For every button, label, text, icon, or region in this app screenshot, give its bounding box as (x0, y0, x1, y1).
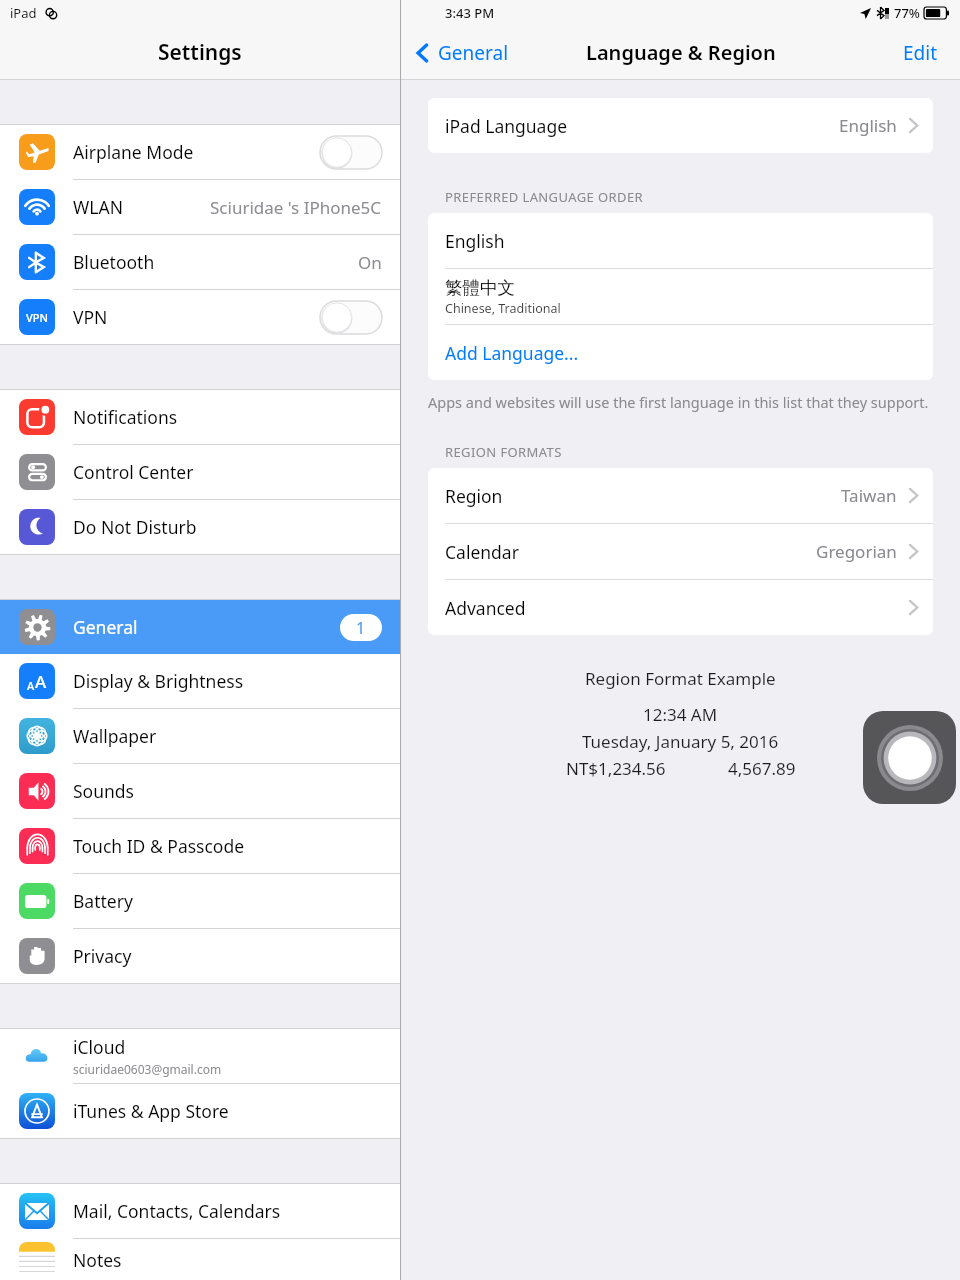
staticText: Sciuridae 's IPhone5C (210, 196, 382, 219)
staticText: 77% (894, 4, 920, 22)
button[interactable]: 繁體中文 (428, 269, 933, 324)
button[interactable]: Control Center (0, 445, 400, 499)
button[interactable]: Sounds (0, 764, 400, 818)
staticText: Chinese, Traditional (445, 300, 561, 317)
staticText: Calendar (445, 540, 519, 564)
staticText: WLAN (73, 195, 123, 219)
staticText: Airplane Mode (73, 140, 194, 164)
button[interactable]: Toggle (320, 136, 382, 169)
staticText: Wallpaper (73, 724, 157, 748)
button[interactable]: iTunes & App Store (0, 1084, 400, 1138)
button[interactable]: Advanced (428, 580, 933, 635)
button[interactable]: Battery (0, 874, 400, 928)
staticText: Region (445, 484, 503, 508)
button[interactable]: General (401, 26, 519, 79)
staticText: A (27, 678, 35, 693)
button[interactable]: Wallpaper (0, 709, 400, 763)
staticText: 12:34 AM (643, 703, 718, 726)
staticText: iCloud (73, 1035, 126, 1059)
button[interactable]: Touch ID & Passcode (0, 819, 400, 873)
staticText: Mail, Contacts, Calendars (73, 1199, 281, 1223)
staticText: Edit (903, 40, 938, 66)
staticText: Privacy (73, 944, 132, 968)
staticText: Touch ID & Passcode (73, 834, 245, 858)
staticText: Tuesday, January 5, 2016 (582, 730, 779, 753)
staticText: NT$1,234.56 (566, 757, 666, 780)
staticText: English (839, 114, 897, 137)
staticText: Bluetooth (73, 250, 155, 274)
staticText: Settings (158, 38, 242, 67)
staticText: Notifications (73, 405, 178, 429)
button[interactable]: Notes (0, 1239, 400, 1280)
button[interactable]: iCloud (0, 1029, 400, 1083)
button[interactable]: Calendar (428, 524, 933, 579)
staticText: Notes (73, 1248, 122, 1272)
staticText: 繁體中文 (445, 277, 515, 299)
staticText: On (358, 251, 382, 274)
staticText: General (438, 40, 509, 66)
staticText: Sounds (73, 779, 134, 803)
staticText: 4,567.89 (728, 757, 796, 780)
button[interactable]: Airplane Mode (0, 125, 400, 179)
staticText: Battery (73, 889, 133, 913)
button[interactable]: English (428, 213, 933, 268)
staticText: Advanced (445, 596, 526, 620)
button[interactable]: A (0, 654, 400, 708)
staticText: iTunes & App Store (73, 1099, 229, 1123)
button[interactable]: Do Not Disturb (0, 500, 400, 554)
button[interactable]: Toggle (320, 301, 382, 334)
staticText: PREFERRED LANGUAGE ORDER (445, 188, 644, 206)
staticText: Display & Brightness (73, 669, 244, 693)
staticText: iPad (10, 4, 37, 22)
staticText: 3:43 PM (445, 4, 495, 22)
staticText: Control Center (73, 460, 194, 484)
button[interactable]: Bluetooth (0, 235, 400, 289)
button[interactable]: Add Language... (428, 325, 933, 380)
staticText: Region Format Example (585, 667, 776, 690)
staticText: Do Not Disturb (73, 515, 197, 539)
staticText: VPN (26, 310, 49, 325)
button[interactable]: Edit (881, 26, 960, 79)
staticText: English (445, 229, 505, 253)
staticText: Add Language... (445, 341, 579, 365)
staticText: VPN (73, 305, 108, 329)
staticText: A (35, 670, 47, 693)
button[interactable]: AssistiveTouch (863, 711, 956, 804)
staticText: Taiwan (841, 484, 897, 507)
staticText: General (73, 615, 138, 639)
button[interactable]: Privacy (0, 929, 400, 983)
button[interactable]: iPad Language (428, 98, 933, 153)
button[interactable]: VPN (0, 290, 400, 344)
button[interactable]: Mail, Contacts, Calendars (0, 1184, 400, 1238)
staticText: REGION FORMATS (445, 443, 562, 461)
staticText: iPad Language (445, 114, 568, 138)
button[interactable]: WLAN (0, 180, 400, 234)
staticText: Apps and websites will use the first lan… (428, 392, 929, 412)
staticText: 1 (356, 617, 366, 639)
staticText: Language & Region (586, 39, 776, 66)
staticText: sciuridae0603@gmail.com (73, 1061, 222, 1077)
staticText: Gregorian (816, 540, 897, 563)
button[interactable]: Region (428, 468, 933, 523)
button[interactable]: Notifications (0, 390, 400, 444)
button[interactable]: General (0, 600, 400, 654)
